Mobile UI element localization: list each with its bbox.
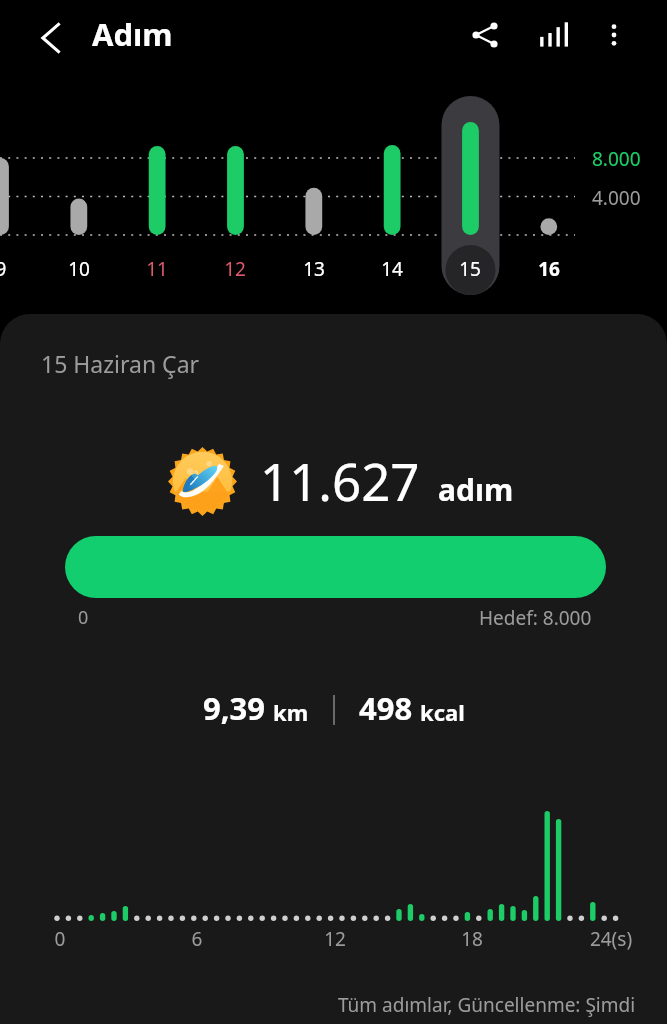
staticText: 0 bbox=[30, 926, 90, 952]
staticText: kcal bbox=[420, 697, 465, 727]
staticText: Hedef: 8.000 bbox=[479, 605, 592, 631]
staticText: 9,39 bbox=[203, 687, 266, 729]
staticText: 15 Haziran Çar bbox=[41, 348, 200, 379]
staticText: 9 bbox=[0, 256, 21, 282]
staticText: 0 bbox=[78, 605, 89, 630]
staticText: 13 bbox=[294, 256, 334, 282]
staticText: 11.627 bbox=[260, 446, 420, 515]
staticText: 18 bbox=[442, 926, 502, 952]
staticText: Tüm adımlar, Güncellenme: Şimdi bbox=[338, 992, 636, 1018]
button[interactable]: Back bbox=[24, 11, 78, 65]
staticText: 12 bbox=[305, 926, 365, 952]
button[interactable]: More options bbox=[587, 8, 641, 62]
button[interactable]: Chart bbox=[527, 10, 581, 64]
staticText: 10 bbox=[59, 256, 99, 282]
staticText: 6 bbox=[167, 926, 227, 952]
staticText: 16 bbox=[529, 256, 569, 282]
staticText: 15 bbox=[450, 256, 490, 282]
staticText: km bbox=[273, 697, 309, 727]
staticText: 498 bbox=[359, 687, 413, 729]
staticText: 24(s) bbox=[581, 926, 641, 952]
staticText: 11 bbox=[137, 256, 177, 282]
staticText: 4.000 bbox=[592, 185, 641, 211]
staticText: 8.000 bbox=[592, 146, 641, 172]
staticText: Adım bbox=[92, 13, 173, 55]
button[interactable]: Share bbox=[458, 8, 512, 62]
staticText: adım bbox=[438, 469, 514, 510]
staticText: 14 bbox=[372, 256, 412, 282]
button[interactable] bbox=[65, 536, 606, 598]
staticText: 12 bbox=[215, 256, 255, 282]
